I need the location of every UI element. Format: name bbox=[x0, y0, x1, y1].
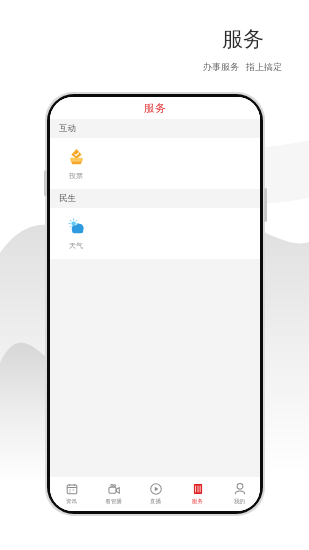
button[interactable]: 资讯 bbox=[50, 477, 92, 511]
staticText: 服务 bbox=[192, 498, 203, 505]
staticText: 民生 bbox=[59, 193, 76, 204]
button[interactable]: 我的 bbox=[218, 477, 260, 511]
staticText: 互动 bbox=[59, 123, 76, 134]
staticText: 我的 bbox=[234, 498, 245, 505]
button[interactable]: 服务 bbox=[176, 477, 218, 511]
button[interactable]: 看直播 bbox=[92, 477, 134, 511]
staticText: 服务 bbox=[222, 26, 264, 52]
button[interactable]: 投票 bbox=[50, 145, 102, 182]
other: 资讯 bbox=[66, 483, 78, 495]
staticText: 服务 bbox=[144, 101, 166, 115]
other: 看直播 bbox=[108, 483, 120, 495]
staticText: 直播 bbox=[150, 498, 161, 505]
staticText: 资讯 bbox=[66, 498, 77, 505]
button[interactable]: 天气 bbox=[50, 215, 102, 252]
staticText: 投票 bbox=[69, 171, 83, 180]
other: 我的 bbox=[234, 483, 246, 495]
staticText: 看管播 bbox=[105, 498, 122, 505]
other: 服务 bbox=[192, 483, 204, 495]
other: 直播 bbox=[150, 483, 162, 495]
staticText: 天气 bbox=[69, 241, 83, 250]
button[interactable]: 直播 bbox=[134, 477, 176, 511]
staticText: 办事服务 指上搞定 bbox=[203, 60, 283, 72]
